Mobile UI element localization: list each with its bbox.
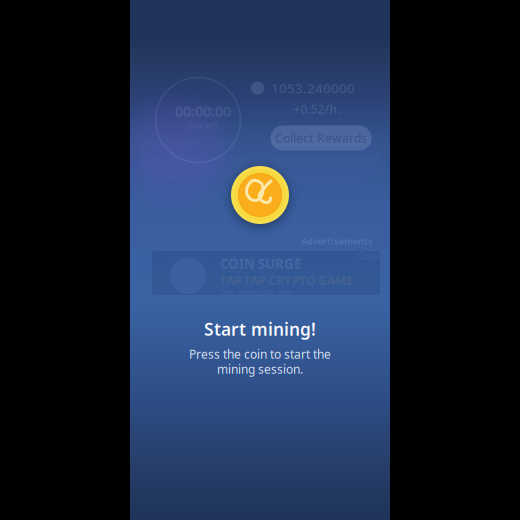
staticText: Close xyxy=(358,251,379,261)
button[interactable]: Start mining xyxy=(231,166,289,224)
staticText: FREE DOWNLOAD NOW xyxy=(220,288,293,297)
staticText: Press the coin to start the xyxy=(189,346,331,362)
button[interactable]: Collect Rewards xyxy=(270,125,371,150)
staticText: 00:00:00 xyxy=(175,101,231,120)
staticText: TAP TAP CRYPTO GAME xyxy=(220,272,353,288)
staticText: Advertisements xyxy=(301,235,373,247)
staticText: COIN SURGE xyxy=(220,255,301,272)
staticText: Start mining! xyxy=(204,317,316,340)
staticText: mining session. xyxy=(217,361,303,377)
staticText: +0.52/h. xyxy=(293,101,340,117)
staticText: Collect Rewards xyxy=(275,130,367,146)
button[interactable]: Close xyxy=(358,251,380,261)
staticText: 1053.240000 xyxy=(271,79,355,97)
staticText: time left xyxy=(187,120,219,131)
